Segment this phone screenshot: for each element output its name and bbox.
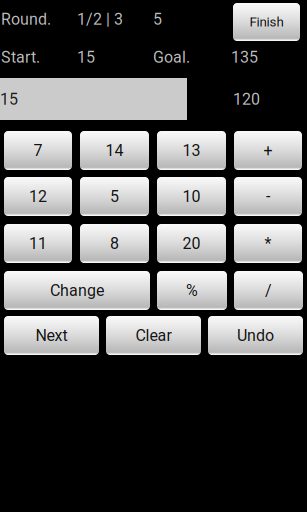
staticText: 120 <box>233 90 260 109</box>
button[interactable]: % <box>157 271 227 310</box>
button[interactable]: 10 <box>157 177 226 216</box>
button[interactable]: Change <box>4 271 150 310</box>
button[interactable]: 7 <box>4 131 72 170</box>
staticText: Next <box>35 326 67 345</box>
staticText: 15 <box>0 90 18 109</box>
staticText: + <box>263 141 272 160</box>
staticText: Change <box>50 281 104 300</box>
staticText: 12 <box>29 187 47 206</box>
staticText: - <box>266 187 270 206</box>
button[interactable]: 12 <box>4 177 72 216</box>
button[interactable]: / <box>234 271 303 310</box>
staticText: 14 <box>105 141 123 160</box>
button[interactable]: 5 <box>80 177 149 216</box>
button[interactable]: Next <box>4 316 99 355</box>
button[interactable]: Undo <box>208 316 303 355</box>
button[interactable]: 8 <box>80 224 149 263</box>
button[interactable]: 13 <box>157 131 226 170</box>
staticText: 7 <box>33 141 42 160</box>
staticText: / <box>265 281 272 300</box>
staticText: 1/2 | 3 <box>77 10 123 29</box>
button[interactable]: Clear <box>106 316 201 355</box>
staticText: % <box>186 281 198 300</box>
button[interactable]: * <box>234 224 302 263</box>
staticText: Clear <box>135 326 171 345</box>
button[interactable]: - <box>234 177 302 216</box>
staticText: Finish <box>249 14 283 30</box>
staticText: 135 <box>231 48 258 67</box>
button[interactable]: Finish <box>233 3 300 41</box>
staticText: 13 <box>182 141 200 160</box>
button[interactable]: 20 <box>157 224 226 263</box>
staticText: * <box>264 234 271 253</box>
staticText: Start. <box>1 48 40 67</box>
staticText: 10 <box>182 187 200 206</box>
staticText: Goal. <box>153 48 190 67</box>
staticText: Round. <box>1 10 51 29</box>
staticText: Undo <box>237 326 274 345</box>
button[interactable]: 14 <box>80 131 149 170</box>
button[interactable]: 11 <box>4 224 72 263</box>
button[interactable]: + <box>234 131 302 170</box>
staticText: 8 <box>110 234 119 253</box>
staticText: 20 <box>182 234 200 253</box>
staticText: 5 <box>153 10 162 29</box>
staticText: 11 <box>29 234 47 253</box>
staticText: 15 <box>77 48 95 67</box>
staticText: 5 <box>110 187 119 206</box>
